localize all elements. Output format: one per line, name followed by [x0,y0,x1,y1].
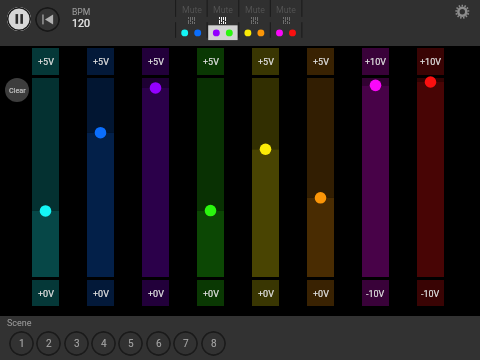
button[interactable]: +0V [87,280,114,306]
staticText: Clear [9,86,26,94]
button[interactable] [87,78,114,277]
button[interactable]: +0V [252,280,279,306]
button[interactable]: Clear [5,78,29,102]
button[interactable]: 6 [146,331,171,356]
button[interactable]: Mute [239,0,271,44]
staticText: 120 [72,17,91,30]
button[interactable]: 1 [9,331,34,356]
staticText: -10V [421,289,440,300]
staticText: -10V [366,289,385,300]
button[interactable]: +5V [252,48,279,75]
staticText: +10V [365,57,386,68]
button[interactable]: +5V [307,48,334,75]
staticText: +0V [93,289,109,300]
staticText: +0V [258,289,274,300]
staticText: +10V [420,57,441,68]
button[interactable]: -10V [362,280,389,306]
button[interactable]: Mute [176,0,208,44]
staticText: +5V [148,57,164,68]
button[interactable]: 4 [91,331,116,356]
staticText: +0V [148,289,164,300]
button[interactable] [197,78,224,277]
button[interactable]: Skip to start [35,7,60,32]
button[interactable]: Settings [450,0,475,25]
staticText: 6 [156,338,162,350]
button[interactable] [417,78,444,277]
button[interactable]: +0V [142,280,169,306]
button[interactable]: Pause [7,7,31,31]
staticText: +5V [203,57,219,68]
button[interactable]: +0V [32,280,59,306]
staticText: BPM [72,7,91,17]
button[interactable]: +5V [32,48,59,75]
button[interactable]: 8 [201,331,226,356]
staticText: +0V [38,289,54,300]
button[interactable] [32,78,59,277]
button[interactable] [307,78,334,277]
button[interactable]: +5V [142,48,169,75]
button[interactable]: -10V [417,280,444,306]
button[interactable]: Mute [270,0,302,44]
staticText: 2 [46,338,52,350]
staticText: +5V [313,57,329,68]
button[interactable]: +10V [362,48,389,75]
button[interactable]: 5 [118,331,143,356]
button[interactable]: 2 [36,331,61,356]
staticText: Mute [207,5,239,15]
staticText: 1 [19,338,25,350]
button[interactable]: Mute [207,0,239,44]
button[interactable] [252,78,279,277]
button[interactable]: 3 [64,331,89,356]
staticText: Mute [176,5,208,15]
button[interactable]: 7 [173,331,198,356]
button[interactable] [142,78,169,277]
button[interactable]: +5V [87,48,114,75]
staticText: Mute [270,5,302,15]
button[interactable]: +0V [197,280,224,306]
staticText: Scene [7,318,32,329]
staticText: Mute [239,5,271,15]
staticText: +5V [93,57,109,68]
button[interactable]: +10V [417,48,444,75]
staticText: +0V [313,289,329,300]
staticText: 8 [211,338,217,350]
staticText: +5V [258,57,274,68]
button[interactable] [362,78,389,277]
staticText: +0V [203,289,219,300]
button[interactable]: +5V [197,48,224,75]
staticText: 7 [183,338,189,350]
button[interactable]: +0V [307,280,334,306]
staticText: +5V [38,57,54,68]
staticText: 4 [101,338,107,350]
staticText: 5 [128,338,134,350]
staticText: 3 [74,338,80,350]
